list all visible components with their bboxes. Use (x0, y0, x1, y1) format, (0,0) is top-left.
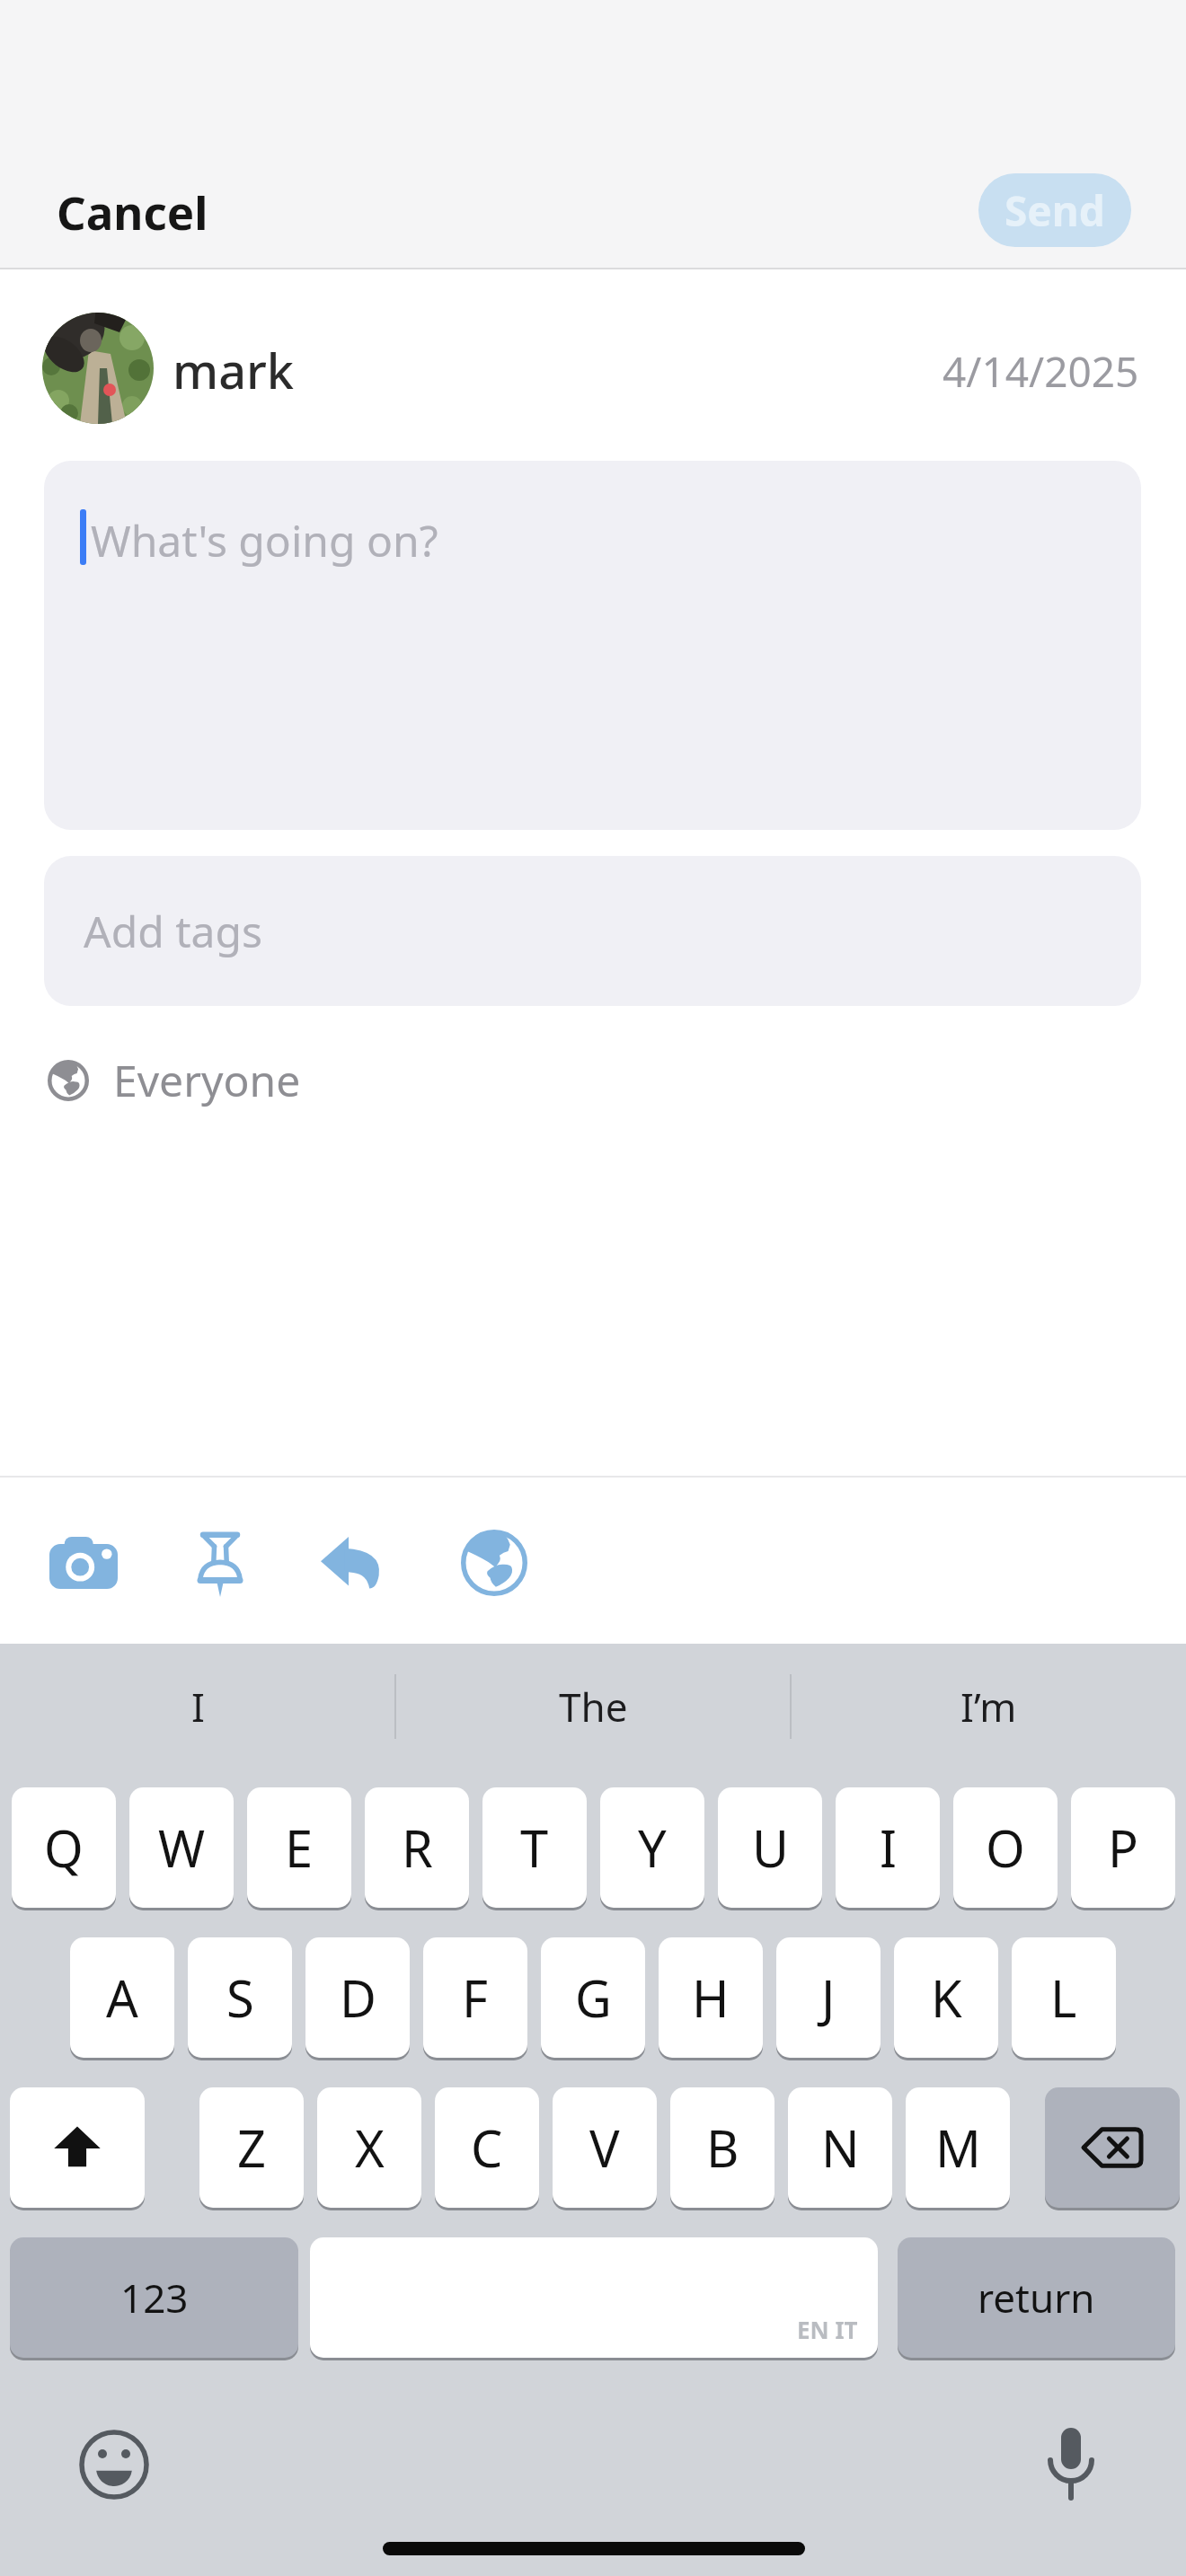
button[interactable]: K (894, 1937, 998, 2058)
button[interactable]: R (365, 1787, 469, 1908)
staticText: U (752, 1813, 789, 1882)
staticText: I (191, 1680, 205, 1734)
staticText: Cancel (57, 181, 208, 243)
button[interactable]: Send (978, 173, 1131, 247)
staticText: L (1050, 1963, 1077, 2032)
staticText: B (706, 2113, 739, 2182)
staticText: EN IT (797, 2314, 858, 2345)
button[interactable] (305, 1522, 395, 1603)
button[interactable]: The (395, 1669, 791, 1744)
button[interactable]: I (0, 1669, 395, 1744)
button[interactable]: H (659, 1937, 763, 2058)
button[interactable] (175, 1522, 265, 1603)
staticText: R (402, 1813, 433, 1882)
button[interactable]: W (129, 1787, 234, 1908)
staticText: I’m (960, 1680, 1017, 1734)
staticText: W (158, 1813, 206, 1882)
button[interactable]: P (1071, 1787, 1175, 1908)
button[interactable]: O (953, 1787, 1058, 1908)
button[interactable] (10, 2087, 145, 2208)
button[interactable] (1045, 2087, 1180, 2208)
staticText: M (935, 2113, 981, 2182)
button[interactable] (36, 1522, 130, 1603)
staticText: G (575, 1963, 612, 2032)
button[interactable]: G (541, 1937, 645, 2058)
staticText: F (462, 1963, 489, 2032)
button[interactable]: What's going on? (44, 461, 1141, 830)
button[interactable]: E (247, 1787, 351, 1908)
staticText: P (1108, 1813, 1138, 1882)
staticText: Everyone (113, 1051, 301, 1109)
staticText: mark (173, 337, 295, 403)
button[interactable]: C (435, 2087, 539, 2208)
button[interactable]: D (305, 1937, 410, 2058)
staticText: E (285, 1813, 314, 1882)
button[interactable]: Z (199, 2087, 304, 2208)
button[interactable]: Everyone (36, 1046, 305, 1114)
button[interactable]: X (317, 2087, 421, 2208)
staticText: S (226, 1963, 254, 2032)
button[interactable]: B (670, 2087, 774, 2208)
staticText: return (978, 2271, 1095, 2325)
button[interactable]: V (553, 2087, 657, 2208)
button[interactable]: Cancel (36, 171, 216, 251)
button[interactable]: U (718, 1787, 822, 1908)
button[interactable]: N (788, 2087, 892, 2208)
button[interactable]: F (423, 1937, 527, 2058)
button[interactable]: T (482, 1787, 587, 1908)
staticText: I (880, 1813, 897, 1882)
button[interactable]: M (906, 2087, 1010, 2208)
staticText: K (931, 1963, 962, 2032)
staticText: Y (638, 1813, 667, 1882)
staticText: What's going on? (91, 511, 438, 569)
button[interactable]: L (1012, 1937, 1116, 2058)
staticText: A (106, 1963, 138, 2032)
staticText: V (589, 2113, 620, 2182)
staticText: O (986, 1813, 1025, 1882)
staticText: Send (1005, 182, 1105, 239)
staticText: Z (237, 2113, 267, 2182)
button[interactable]: return (898, 2237, 1175, 2358)
button[interactable]: Q (12, 1787, 116, 1908)
staticText: The (559, 1680, 628, 1734)
button[interactable]: Add tags (44, 856, 1141, 1006)
button[interactable]: EN IT (310, 2237, 878, 2358)
staticText: D (340, 1963, 376, 2032)
staticText: H (692, 1963, 730, 2032)
staticText: N (821, 2113, 860, 2182)
button[interactable]: Y (600, 1787, 704, 1908)
button[interactable] (449, 1522, 539, 1603)
staticText: Q (44, 1813, 84, 1882)
button[interactable] (69, 2420, 159, 2510)
button[interactable]: A (70, 1937, 174, 2058)
staticText: C (471, 2113, 503, 2182)
button[interactable]: S (188, 1937, 292, 2058)
staticText: 4/14/2025 (943, 343, 1139, 400)
staticText: X (355, 2113, 385, 2182)
staticText: J (821, 1963, 836, 2032)
button[interactable] (1026, 2420, 1116, 2510)
button[interactable]: I (836, 1787, 940, 1908)
staticText: T (520, 1813, 549, 1882)
button[interactable]: I’m (791, 1669, 1186, 1744)
staticText: Add tags (84, 902, 262, 960)
button[interactable]: 123 (10, 2237, 298, 2358)
staticText: 123 (120, 2271, 189, 2325)
button[interactable]: J (776, 1937, 881, 2058)
